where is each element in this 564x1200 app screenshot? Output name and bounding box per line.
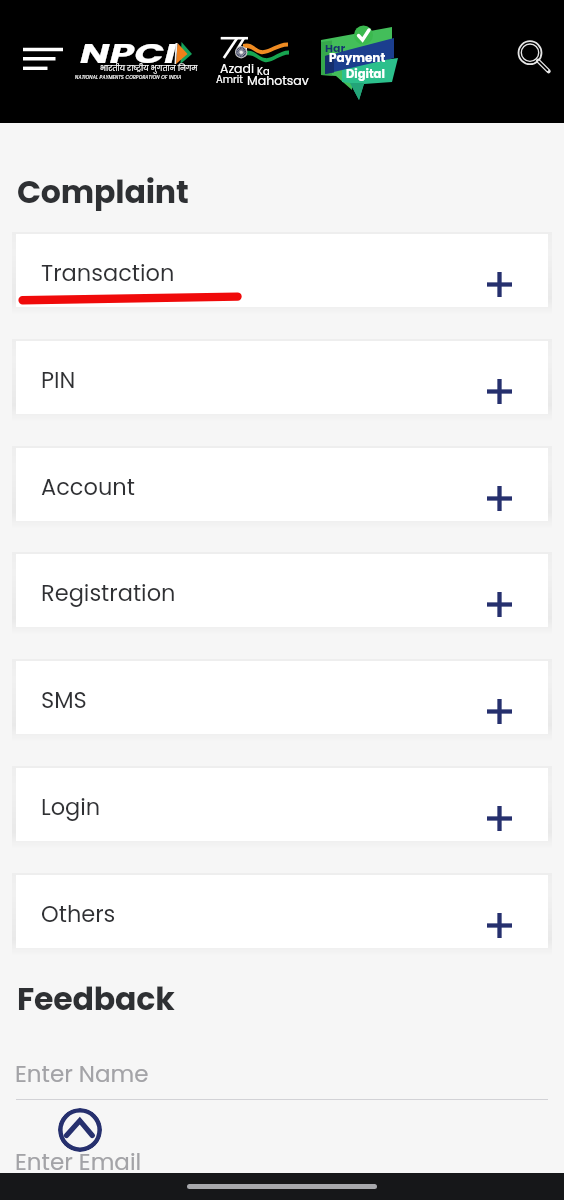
staticText: NATIONAL PAYMENTS CORPORATION OF INDIA xyxy=(75,74,182,80)
button[interactable]: PIN xyxy=(16,341,548,414)
staticText: SMS xyxy=(41,684,87,715)
staticText: Digital xyxy=(346,66,385,82)
button[interactable]: Transaction xyxy=(16,234,548,307)
button[interactable]: Others xyxy=(16,875,548,948)
button[interactable]: Enter Email xyxy=(16,1134,548,1188)
staticText: Amrit xyxy=(216,72,243,86)
staticText: Feedback xyxy=(17,977,175,1021)
staticText: Enter Email xyxy=(15,1146,142,1178)
staticText: Others xyxy=(41,898,116,929)
staticText: Ka xyxy=(257,64,270,78)
button[interactable]: Account xyxy=(16,448,548,521)
staticText: Registration xyxy=(41,577,176,608)
staticText: भारतीय राष्ट्रीय भुगतान निगम xyxy=(100,63,198,73)
staticText: NPCI xyxy=(80,36,177,72)
staticText: Transaction xyxy=(41,257,175,288)
staticText: Har xyxy=(325,40,346,55)
button[interactable]: Registration xyxy=(16,554,548,627)
button[interactable]: Search xyxy=(506,28,556,78)
button[interactable]: SMS xyxy=(16,661,548,734)
staticText: Azadi xyxy=(220,60,255,77)
staticText: Mahotsav xyxy=(247,72,309,89)
staticText: Payment xyxy=(329,49,386,66)
staticText: PIN xyxy=(41,364,76,395)
staticText: Account xyxy=(41,471,135,502)
button[interactable]: Scroll to top xyxy=(58,1108,102,1152)
staticText: Enter Name xyxy=(15,1058,149,1090)
staticText: Login xyxy=(41,791,101,822)
staticText: Complaint xyxy=(17,170,189,214)
button[interactable]: Login xyxy=(16,768,548,841)
button[interactable]: Enter Name xyxy=(16,1046,548,1100)
button[interactable]: Menu xyxy=(11,36,65,84)
